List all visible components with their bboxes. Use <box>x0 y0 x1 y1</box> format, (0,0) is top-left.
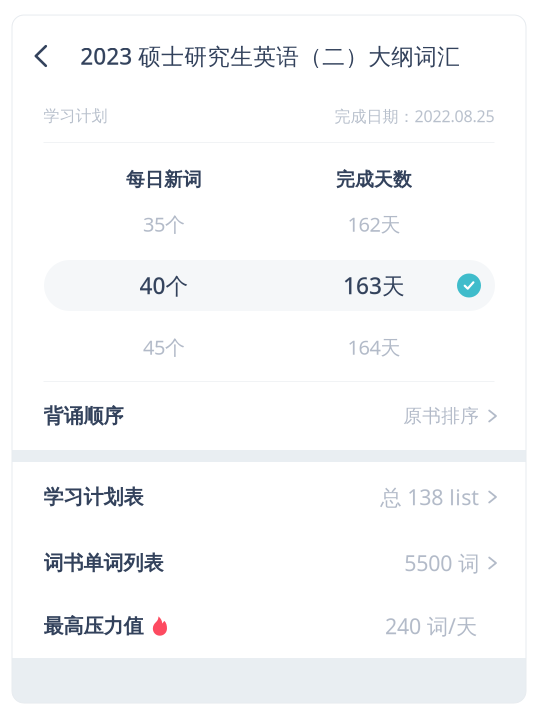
staticText: 35个 <box>143 211 185 237</box>
staticText: 每日新词 <box>126 168 202 191</box>
staticText: 背诵顺序 <box>43 404 123 428</box>
staticText: 词书单词列表 <box>43 551 163 575</box>
button[interactable]: 学习计划表 <box>12 462 526 532</box>
button[interactable]: 最高压力值 <box>12 594 526 658</box>
staticText: 2023 硕士研究生英语（二）大纲词汇 <box>80 41 460 71</box>
staticText: 最高压力值 <box>43 614 143 638</box>
staticText: 原书排序 <box>403 404 479 427</box>
button[interactable]: Back <box>24 36 57 76</box>
staticText: 学习计划 <box>43 106 107 126</box>
staticText: 45个 <box>143 334 185 360</box>
staticText: 40个 <box>139 270 188 300</box>
staticText: 完成日期：2022.08.25 <box>334 105 494 127</box>
staticText: 学习计划表 <box>43 485 143 509</box>
staticText: 完成天数 <box>336 168 412 191</box>
staticText: 162天 <box>347 211 400 237</box>
staticText: 163天 <box>343 270 405 300</box>
staticText: 164天 <box>347 334 400 360</box>
button[interactable]: 词书单词列表 <box>12 532 526 594</box>
staticText: 240 词/天 <box>385 612 477 640</box>
button[interactable]: 背诵顺序 <box>12 382 526 450</box>
staticText: 总 138 list <box>380 483 479 511</box>
staticText: 5500 词 <box>404 549 479 577</box>
